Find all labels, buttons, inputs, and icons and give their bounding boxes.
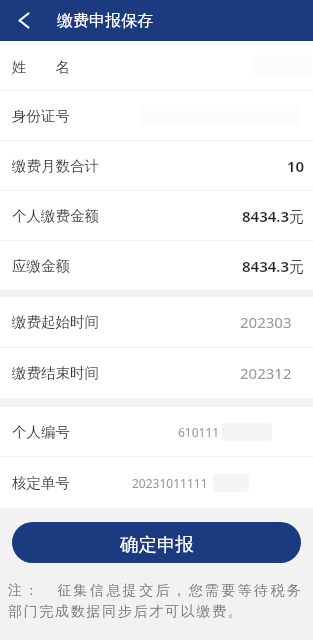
staticText: 个人编号 (12, 423, 70, 441)
button[interactable]: 缴费结束时间 (0, 348, 313, 398)
staticText: 应缴金额 (12, 257, 70, 275)
staticText: 姓 名 (12, 56, 70, 76)
staticText: 缴费起始时间 (12, 313, 99, 331)
staticText: 缴费结束时间 (12, 364, 99, 382)
staticText: 部门完成数据同步后才可以缴费。 (8, 603, 244, 621)
staticText: 8434.3元 (242, 256, 305, 276)
staticText: 身份证号 (12, 107, 70, 125)
staticText: 缴费月数合计 (12, 157, 99, 175)
button[interactable]: 身份证号 (0, 91, 313, 140)
staticText: 20231011111 (132, 475, 208, 491)
button[interactable]: 个人缴费金额 (0, 191, 313, 240)
staticText: 确定申报 (120, 533, 194, 556)
button[interactable]: 缴费起始时间 (0, 297, 313, 347)
staticText: 610111 (178, 424, 220, 440)
staticText: 注： 征集信息提交后，您需要等待税务 (8, 580, 304, 599)
button[interactable]: 个人编号 (0, 407, 313, 456)
staticText: 个人缴费金额 (12, 207, 99, 225)
staticText: 10 (287, 156, 305, 176)
staticText: 核定单号 (12, 474, 70, 492)
button[interactable]: 应缴金额 (0, 241, 313, 290)
staticText: 202303 (240, 312, 292, 332)
button[interactable]: 核定单号 (0, 457, 313, 508)
staticText: 8434.3元 (242, 206, 305, 226)
button[interactable]: Back (0, 0, 48, 41)
staticText: 缴费申报保存 (57, 11, 153, 31)
staticText: 202312 (240, 363, 292, 383)
button[interactable]: 确定申报 (12, 522, 301, 563)
button[interactable]: 姓 名 (0, 41, 313, 90)
button[interactable]: 缴费月数合计 (0, 141, 313, 190)
